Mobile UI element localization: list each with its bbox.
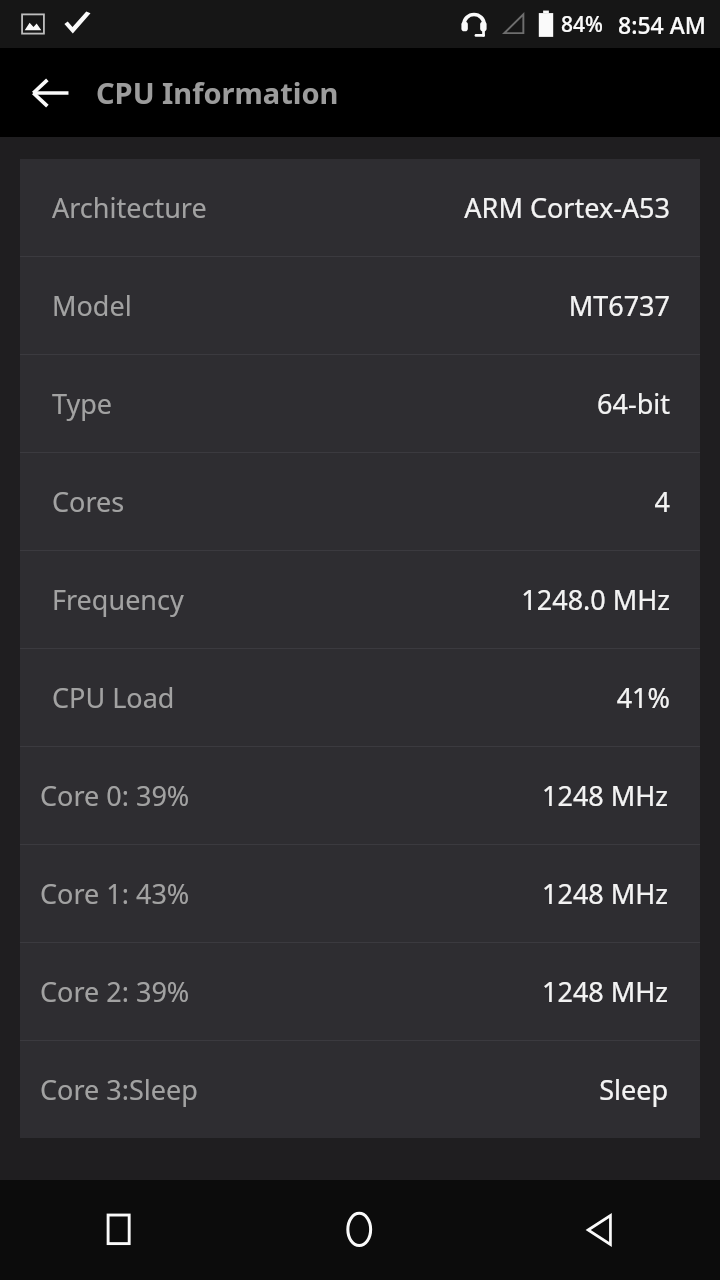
staticText: MT6737	[568, 287, 670, 324]
staticText: 41%	[616, 679, 670, 716]
staticText: 1248 MHz	[542, 777, 668, 814]
staticText: 4	[654, 483, 670, 520]
button[interactable]: Back	[14, 57, 86, 129]
staticText: Model	[52, 287, 132, 324]
button[interactable]: Architecture	[20, 159, 700, 256]
button[interactable]: Type	[20, 355, 700, 452]
staticText: Cores	[52, 483, 125, 520]
staticText: Sleep	[599, 1071, 668, 1108]
button[interactable]: Back	[480, 1180, 720, 1280]
button[interactable]: Core 0: 39%	[20, 747, 700, 844]
staticText: 1248 MHz	[542, 875, 668, 912]
button[interactable]: Frequency	[20, 551, 700, 648]
staticText: 64-bit	[597, 385, 670, 422]
staticText: Core 2: 39%	[40, 973, 190, 1010]
staticText: CPU Information	[96, 73, 339, 112]
staticText: Core 0: 39%	[40, 777, 190, 814]
button[interactable]: CPU Load	[20, 649, 700, 746]
staticText: 84%	[561, 10, 603, 39]
button[interactable]: Core 1: 43%	[20, 845, 700, 942]
button[interactable]: Model	[20, 257, 700, 354]
staticText: Architecture	[52, 189, 207, 226]
staticText: Type	[52, 385, 113, 422]
button[interactable]: Core 3:Sleep	[20, 1041, 700, 1138]
button[interactable]: Core 2: 39%	[20, 943, 700, 1040]
button[interactable]: Recent apps	[0, 1180, 240, 1280]
staticText: 1248 MHz	[542, 973, 668, 1010]
staticText: Core 1: 43%	[40, 875, 190, 912]
staticText: 1248.0 MHz	[521, 581, 670, 618]
button[interactable]: Cores	[20, 453, 700, 550]
staticText: CPU Load	[52, 679, 175, 716]
staticText: Frequency	[52, 581, 184, 618]
staticText: 8:54 AM	[618, 9, 706, 40]
button[interactable]: Home	[240, 1180, 480, 1280]
staticText: Core 3:Sleep	[40, 1071, 198, 1108]
staticText: ARM Cortex-A53	[464, 189, 670, 226]
